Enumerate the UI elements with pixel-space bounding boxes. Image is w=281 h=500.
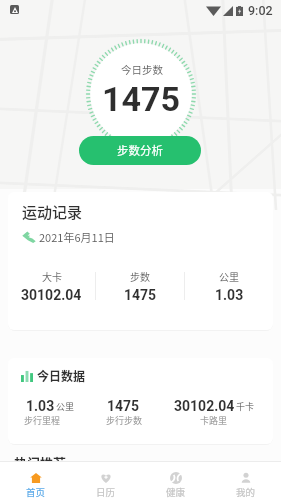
staticText: 2021年6月11日: [39, 229, 115, 245]
staticText: 1475: [107, 398, 140, 414]
staticText: 热门推荐: [14, 453, 67, 472]
staticText: 运动记录: [22, 201, 83, 223]
staticText: 公里: [219, 269, 239, 283]
staticText: 公里: [56, 400, 75, 413]
staticText: 1475: [124, 287, 157, 303]
staticText: 卡路里: [200, 414, 228, 427]
button[interactable]: Calendar: [71, 462, 141, 500]
staticText: 我的: [236, 485, 256, 499]
staticText: 健康: [166, 485, 186, 499]
button[interactable]: Home: [0, 462, 71, 500]
staticText: 今日数据: [37, 367, 86, 384]
staticText: 首页: [26, 485, 46, 499]
staticText: 1.03: [26, 398, 55, 414]
staticText: 1475: [102, 79, 181, 119]
staticText: 步数分析: [117, 142, 163, 159]
staticText: 9:02: [248, 3, 273, 18]
staticText: 步行里程: [24, 414, 61, 427]
staticText: 步行步数: [106, 414, 143, 427]
button[interactable]: 步数分析: [79, 136, 201, 165]
staticText: 1.03: [215, 287, 244, 303]
button[interactable]: Health: [141, 462, 211, 500]
staticText: 千卡: [236, 400, 255, 413]
staticText: 30102.04: [174, 398, 235, 414]
staticText: 30102.04: [21, 287, 82, 303]
button[interactable]: Profile: [211, 462, 281, 500]
staticText: 步数: [130, 269, 150, 283]
staticText: 今日步数: [121, 62, 163, 77]
staticText: 大卡: [42, 269, 62, 283]
staticText: 日历: [96, 485, 116, 499]
